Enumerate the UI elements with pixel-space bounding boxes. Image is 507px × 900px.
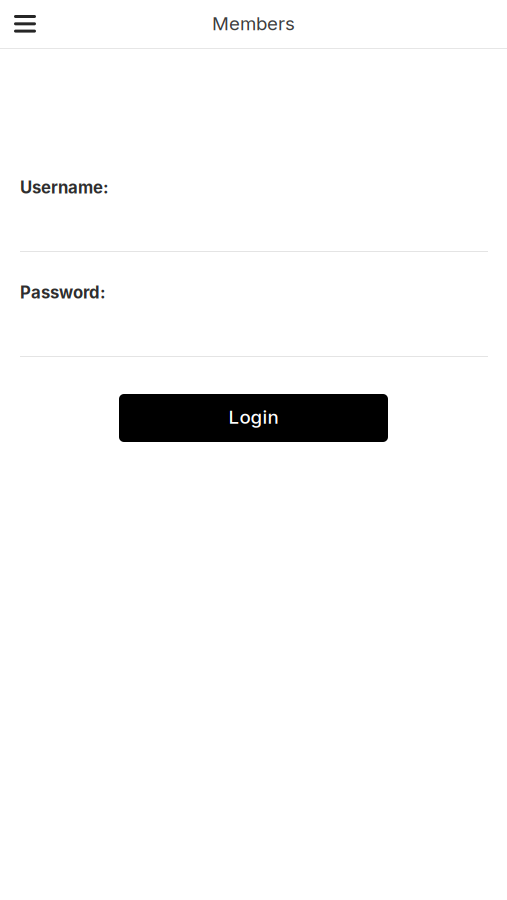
staticText: Members <box>212 12 295 35</box>
staticText: Username: <box>20 177 109 198</box>
button[interactable]: Login <box>119 394 388 442</box>
button[interactable]: Password: <box>0 284 507 357</box>
button[interactable]: Username: <box>0 179 507 252</box>
staticText: Password: <box>20 282 106 303</box>
staticText: Login <box>228 406 278 428</box>
button[interactable]: Menu <box>3 0 47 46</box>
